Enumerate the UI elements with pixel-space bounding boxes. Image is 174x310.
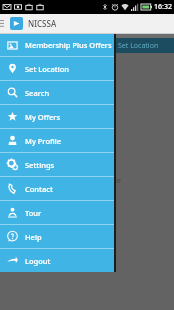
staticText: My Offers xyxy=(25,112,61,122)
staticText: Set Location xyxy=(118,41,159,51)
button[interactable]: Tour xyxy=(0,201,114,224)
button[interactable]: Membership Plus Offers xyxy=(0,34,114,56)
staticText: Set Location xyxy=(25,64,69,74)
staticText: or xyxy=(114,176,122,186)
staticText: Tour xyxy=(25,208,42,218)
button[interactable]: My Offers xyxy=(0,105,114,128)
staticText: NICSSA xyxy=(28,18,57,29)
button[interactable]: Logout xyxy=(0,249,114,272)
button[interactable]: Open navigation drawer xyxy=(0,14,7,33)
button[interactable]: Search xyxy=(0,81,114,104)
button[interactable]: My Profile xyxy=(0,129,114,152)
staticText: My Profile xyxy=(25,136,61,146)
staticText: Logout xyxy=(25,256,51,266)
staticText: Contact xyxy=(25,184,53,194)
staticText: Search xyxy=(25,88,50,98)
staticText: Settings xyxy=(25,160,55,170)
button[interactable]: Contact xyxy=(0,177,114,200)
button[interactable]: Settings xyxy=(0,153,114,176)
button[interactable]: Help xyxy=(0,225,114,248)
button[interactable]: Set Location xyxy=(0,57,114,80)
staticText: Membership Plus Offers xyxy=(25,40,112,50)
staticText: Help xyxy=(25,232,42,242)
staticText: 16:32 xyxy=(154,2,172,12)
